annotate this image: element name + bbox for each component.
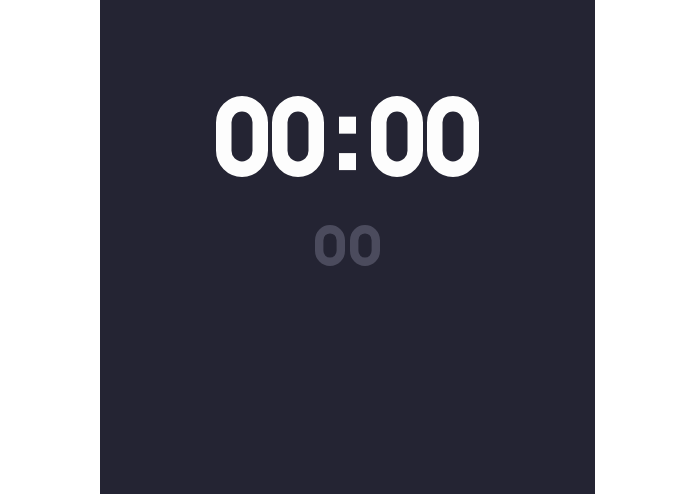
button[interactable]: Hundredths 00 [313, 225, 383, 266]
button[interactable]: Stopwatch 00:00.00 [100, 0, 595, 494]
button[interactable]: Elapsed time 00:00 [213, 96, 483, 177]
